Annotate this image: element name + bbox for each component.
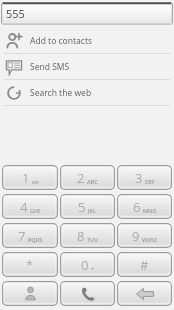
staticText: PQRS [28,236,43,243]
staticText: 2 [77,169,85,187]
button[interactable]: 0 [60,252,115,277]
button[interactable]: # [117,252,172,277]
staticText: oo [32,178,39,185]
staticText: 1 [22,169,30,187]
button[interactable]: Call [60,281,115,306]
staticText: 8 [77,227,85,245]
button[interactable]: 7 [2,223,58,248]
button[interactable]: 3 [117,165,172,190]
staticText: * [26,256,34,274]
staticText: MNO [143,207,157,214]
button[interactable]: Contacts [2,281,58,306]
button[interactable]: Delete [117,281,172,306]
staticText: 555 [6,6,25,21]
button[interactable]: 1 [2,165,58,190]
button[interactable]: * [2,252,58,277]
staticText: Send SMS [30,61,70,73]
staticText: 0 [81,256,89,274]
staticText: DEF [145,178,155,185]
staticText: # [140,256,149,274]
staticText: 7 [18,227,26,245]
staticText: 4 [20,198,28,216]
button[interactable]: 555 [1,2,173,25]
button[interactable]: 9 [117,223,172,248]
button[interactable]: Search the web [0,80,174,105]
staticText: ABC [87,178,98,185]
staticText: 3 [135,169,143,187]
button[interactable]: 2 [60,165,115,190]
staticText: + [91,265,95,272]
staticText: GHI [30,207,41,214]
button[interactable]: 5 [60,194,115,219]
button[interactable]: 4 [2,194,58,219]
staticText: JKL [88,207,97,214]
button[interactable]: 8 [60,223,115,248]
button[interactable]: Send SMS [0,54,174,79]
staticText: WXYZ [142,236,157,243]
button[interactable]: 6 [117,194,172,219]
button[interactable]: Add to contacts [0,28,174,53]
staticText: 9 [132,227,140,245]
staticText: TUV [87,236,98,243]
staticText: 5 [78,198,86,216]
staticText: Add to contacts [30,35,93,47]
staticText: 6 [133,198,141,216]
staticText: Search the web [30,87,92,99]
